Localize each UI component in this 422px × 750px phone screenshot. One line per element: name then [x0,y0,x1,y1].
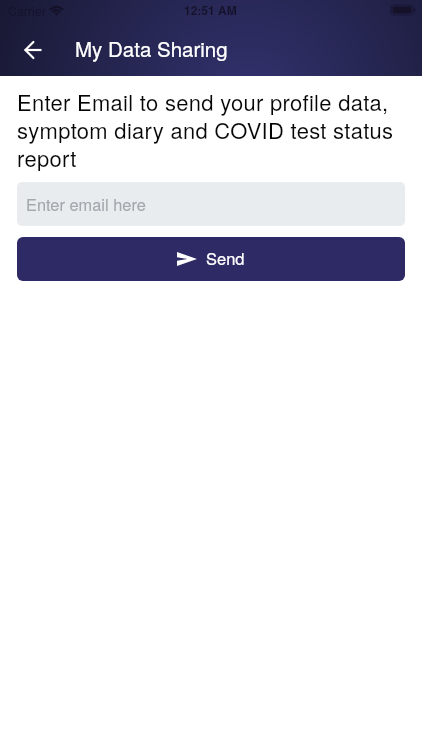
staticText: Send [206,246,245,270]
staticText: Carrier [8,2,46,20]
staticText: My Data Sharing [75,33,228,62]
button[interactable]: Back [8,25,57,74]
other: Wi-Fi [49,4,64,16]
staticText: Enter Email to send your profile data, s… [17,89,408,173]
button[interactable]: Send [17,237,405,281]
staticText: Enter email here [26,192,146,215]
staticText: 12:51 AM [184,1,237,18]
button[interactable]: Enter email here [17,182,405,226]
